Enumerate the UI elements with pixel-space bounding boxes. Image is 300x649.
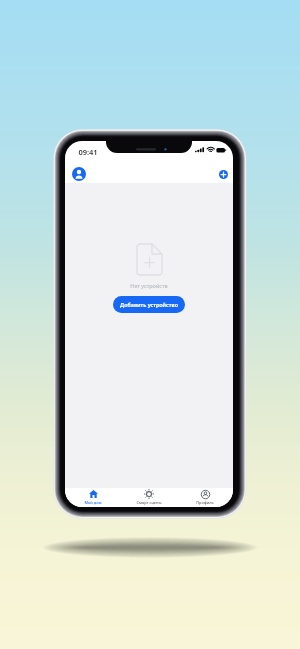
staticText: Смарт сцены <box>136 500 162 505</box>
staticText: Добавить устройство <box>120 301 178 308</box>
button[interactable]: Добавить устройство <box>113 296 185 313</box>
staticText: Профиль <box>196 500 214 505</box>
button[interactable]: Add device <box>219 170 228 179</box>
button[interactable]: Смарт сцены <box>121 488 177 507</box>
staticText: Нет устройств <box>130 282 168 289</box>
button[interactable]: Профиль <box>177 488 233 507</box>
staticText: Мой дом <box>84 500 102 505</box>
button[interactable]: Мой дом <box>65 488 121 507</box>
staticText: 09:41 <box>78 147 98 157</box>
button[interactable]: Profile <box>72 167 86 181</box>
